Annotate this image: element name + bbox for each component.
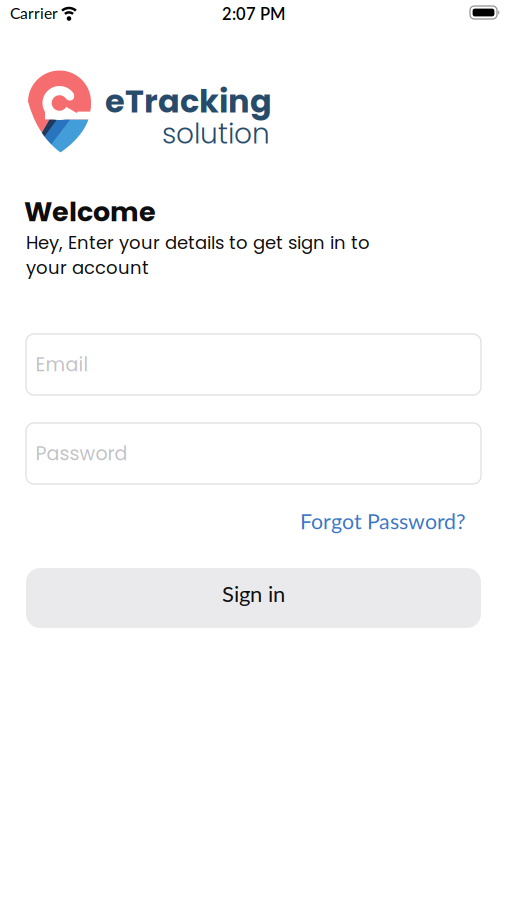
button[interactable]: Forgot Password? [300, 508, 466, 534]
button[interactable]: Sign in [26, 568, 481, 628]
staticText: Email [35, 351, 88, 378]
staticText: Forgot Password? [300, 508, 466, 534]
staticText: 2:07 PM [222, 4, 285, 23]
staticText: Sign in [222, 580, 285, 607]
staticText: Hey, Enter your details to get sign in t… [26, 230, 370, 280]
staticText: eTracking [105, 79, 272, 124]
staticText: Welcome [24, 193, 156, 231]
staticText: Password [35, 440, 127, 467]
staticText: Carrier [10, 4, 58, 22]
button[interactable]: Email [26, 334, 481, 395]
button[interactable]: Password [26, 423, 481, 484]
staticText: solution [162, 114, 270, 153]
